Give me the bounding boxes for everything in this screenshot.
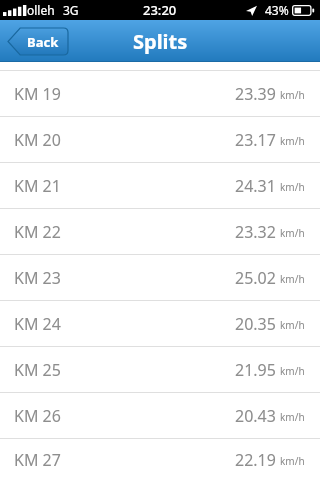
staticText: km/h [280, 454, 305, 468]
button[interactable]: KM 21 [0, 163, 320, 208]
button[interactable]: KM 23 [0, 255, 320, 300]
staticText: km/h [280, 180, 305, 194]
staticText: 22.19 [235, 449, 276, 471]
staticText: km/h [280, 364, 305, 378]
button[interactable]: KM 25 [0, 347, 320, 392]
button[interactable]: KM 26 [0, 393, 320, 438]
staticText: KM 27 [14, 449, 61, 471]
staticText: 43% [265, 2, 289, 18]
staticText: KM 24 [14, 313, 61, 335]
button[interactable]: KM 20 [0, 117, 320, 162]
staticText: km/h [280, 88, 305, 102]
button[interactable]: Back [8, 28, 68, 55]
staticText: 23.17 [235, 129, 276, 151]
staticText: 20.43 [235, 405, 276, 427]
staticText: KM 21 [14, 175, 61, 197]
button[interactable]: KM 19 [0, 71, 320, 116]
staticText: km/h [280, 272, 305, 286]
staticText: km/h [280, 318, 305, 332]
button[interactable]: KM 22 [0, 209, 320, 254]
staticText: 21.95 [235, 359, 276, 381]
staticText: olleh [27, 2, 55, 18]
staticText: Back [27, 33, 59, 51]
staticText: 23:20 [143, 1, 177, 19]
staticText: KM 25 [14, 359, 61, 381]
staticText: km/h [280, 134, 305, 148]
staticText: KM 26 [14, 405, 61, 427]
staticText: 3G [63, 2, 79, 18]
staticText: KM 22 [14, 221, 61, 243]
button[interactable]: KM 27 [0, 439, 320, 480]
staticText: km/h [280, 226, 305, 240]
staticText: 23.32 [235, 221, 276, 243]
staticText: 23.39 [235, 83, 276, 105]
staticText: km/h [280, 410, 305, 424]
staticText: KM 19 [14, 83, 61, 105]
staticText: KM 23 [14, 267, 61, 289]
staticText: 25.02 [235, 267, 276, 289]
staticText: KM 20 [14, 129, 61, 151]
button[interactable]: KM 24 [0, 301, 320, 346]
staticText: 24.31 [235, 175, 276, 197]
staticText: 20.35 [235, 313, 276, 335]
staticText: Splits [133, 28, 188, 55]
